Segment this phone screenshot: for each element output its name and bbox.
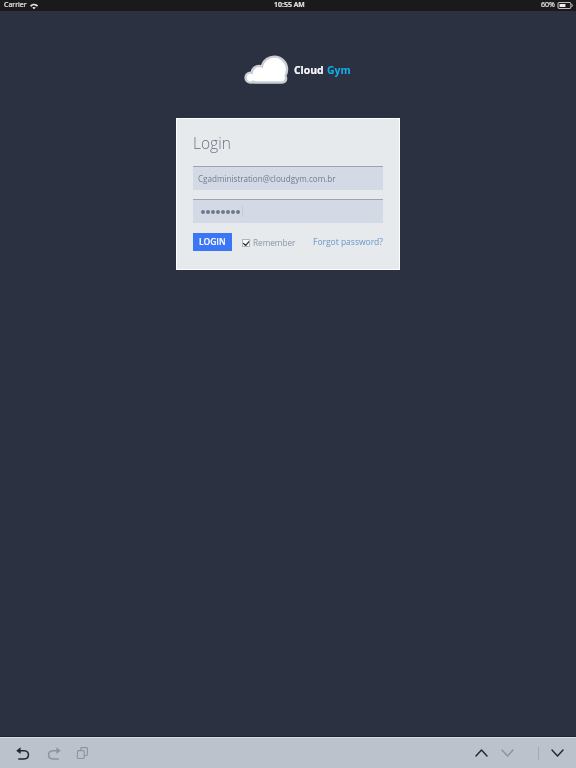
button[interactable]: LOGIN — [193, 233, 232, 251]
button[interactable]: Remember — [242, 237, 296, 248]
staticText: Gym — [327, 63, 351, 77]
button[interactable]: Paste — [74, 742, 91, 764]
button[interactable]: Undo — [14, 742, 31, 764]
staticText: 10:55 AM — [274, 0, 305, 10]
staticText: 60% — [541, 0, 555, 10]
staticText: Forgot password? — [313, 236, 383, 248]
staticText: Login — [193, 132, 231, 153]
button[interactable]: Cgadministration@cloudgym.com.br — [193, 166, 383, 190]
staticText: Cgadministration@cloudgym.com.br — [198, 173, 336, 184]
staticText: LOGIN — [199, 236, 226, 248]
button[interactable]: Hide keyboard — [547, 742, 568, 764]
staticText: Cloud — [294, 63, 324, 77]
button[interactable]: Previous field — [471, 742, 492, 764]
button[interactable] — [193, 199, 383, 223]
staticText: Carrier — [4, 0, 27, 10]
staticText: Remember — [253, 237, 296, 248]
button[interactable]: Forgot password? — [313, 236, 383, 248]
button[interactable]: Redo — [45, 742, 62, 764]
button[interactable]: Next field — [497, 742, 518, 764]
